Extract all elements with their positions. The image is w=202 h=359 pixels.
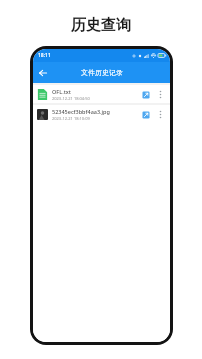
button[interactable]: OFL.txt bbox=[33, 85, 170, 103]
staticText: 历史查询 bbox=[0, 16, 202, 35]
button[interactable]: Back bbox=[35, 65, 51, 81]
button[interactable]: More options bbox=[154, 88, 166, 100]
staticText: 2023-12-21 18:10:09 bbox=[52, 116, 90, 121]
staticText: OFL.txt bbox=[52, 88, 71, 95]
staticText: 文件历史记录 bbox=[81, 68, 123, 77]
staticText: 18:11 bbox=[38, 52, 51, 59]
staticText: 2023-12-21 18:04:50 bbox=[52, 96, 90, 101]
staticText: 52345ecf3bbf4aa3.jpg bbox=[52, 108, 110, 115]
button[interactable]: Share file bbox=[139, 88, 152, 101]
button[interactable]: 52345ecf3bbf4aa3.jpg bbox=[33, 105, 170, 123]
button[interactable]: More options bbox=[154, 108, 166, 120]
button[interactable]: Share file bbox=[139, 108, 152, 121]
